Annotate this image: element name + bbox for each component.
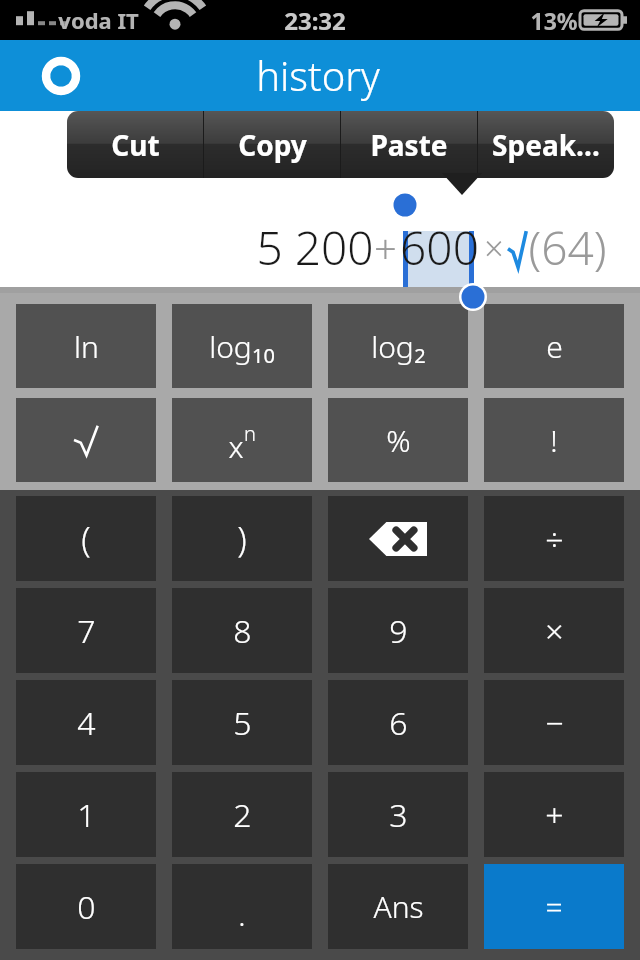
staticText: 0 — [77, 885, 96, 929]
staticText: ! — [550, 420, 558, 461]
staticText: . — [238, 894, 246, 935]
staticText: x — [228, 426, 244, 467]
button[interactable]: + — [484, 772, 624, 857]
button[interactable]: log — [172, 304, 312, 388]
button[interactable]: 3 — [328, 772, 468, 857]
staticText: 10 — [252, 342, 275, 369]
staticText: voda IT — [58, 5, 139, 35]
button[interactable]: Cut — [67, 111, 203, 178]
staticText: 23:32 — [284, 4, 346, 37]
button[interactable]: 9 — [328, 588, 468, 673]
staticText: Cut — [111, 126, 160, 164]
button[interactable]: × — [484, 588, 624, 673]
button[interactable]: ln — [16, 304, 156, 388]
staticText: − — [545, 701, 564, 745]
staticText: Copy — [238, 126, 307, 164]
button[interactable]: e — [484, 304, 624, 388]
staticText: n — [244, 420, 256, 447]
staticText: 600 — [400, 216, 479, 279]
button[interactable]: − — [484, 680, 624, 765]
button[interactable]: 2 — [172, 772, 312, 857]
button[interactable]: 5 — [172, 680, 312, 765]
staticText: 5 — [233, 701, 252, 745]
staticText: ln — [74, 326, 99, 367]
staticText: 4 — [77, 701, 96, 745]
staticText: 9 — [389, 609, 408, 653]
button[interactable]: log — [328, 304, 468, 388]
button[interactable]: % — [328, 398, 468, 482]
button[interactable]: 4 — [16, 680, 156, 765]
staticText: 7 — [77, 609, 96, 653]
staticText: e — [546, 326, 563, 367]
staticText: Speak… — [492, 126, 600, 164]
staticText: 2 — [233, 793, 252, 837]
staticText: 1 — [77, 793, 96, 837]
staticText: 3 — [389, 793, 408, 837]
staticText: 13% — [530, 5, 578, 36]
staticText: Ans — [373, 886, 424, 927]
staticText: = — [545, 886, 563, 927]
button[interactable]: . — [172, 864, 312, 949]
button[interactable]: Ans — [328, 864, 468, 949]
staticText: history — [256, 48, 380, 102]
staticText: ) — [237, 516, 247, 562]
button[interactable]: 0 — [16, 864, 156, 949]
button[interactable]: 8 — [172, 588, 312, 673]
button[interactable]: Backspace — [328, 496, 468, 581]
staticText: (64) — [528, 216, 607, 279]
button[interactable]: ! — [484, 398, 624, 482]
staticText: log — [209, 326, 252, 367]
button[interactable]: ) — [172, 496, 312, 581]
button[interactable]: = — [484, 864, 624, 949]
staticText: 2 — [414, 342, 426, 369]
staticText: 8 — [233, 609, 252, 653]
staticText: ÷ — [545, 517, 564, 561]
button[interactable]: ( — [16, 496, 156, 581]
button[interactable]: Paste — [341, 111, 477, 178]
staticText: + — [545, 793, 564, 837]
staticText: 5 200 — [256, 216, 374, 279]
button[interactable]: Copy — [204, 111, 340, 178]
staticText: Paste — [370, 126, 448, 164]
staticText: + — [374, 221, 397, 275]
button[interactable]: 6 — [328, 680, 468, 765]
button[interactable]: x — [172, 398, 312, 482]
button[interactable]: Settings — [28, 43, 94, 109]
button[interactable]: 7 — [16, 588, 156, 673]
button[interactable] — [16, 398, 156, 482]
staticText: × — [484, 225, 504, 271]
staticText: 10 000 — [483, 103, 608, 157]
staticText: % — [386, 420, 411, 461]
staticText: ( — [81, 516, 91, 562]
button[interactable]: ÷ — [484, 496, 624, 581]
button[interactable]: Speak… — [478, 111, 614, 178]
staticText: log — [371, 326, 414, 367]
staticText: 6 — [389, 701, 408, 745]
button[interactable]: 1 — [16, 772, 156, 857]
staticText: × — [545, 609, 564, 653]
